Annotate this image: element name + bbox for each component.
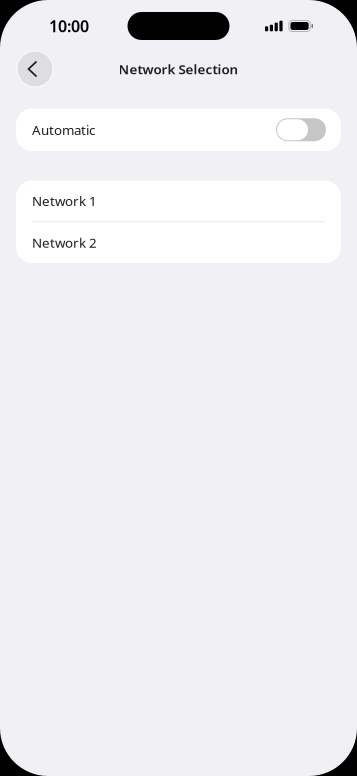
staticText: Automatic (32, 121, 95, 139)
button[interactable]: Back (17, 51, 53, 87)
staticText: 10:00 (49, 15, 89, 37)
staticText: Network Selection (118, 60, 238, 78)
button[interactable]: Network 2 (16, 222, 341, 263)
staticText: Network 2 (32, 234, 97, 251)
staticText: Network 1 (32, 192, 97, 210)
button[interactable]: Network 1 (16, 180, 341, 221)
button[interactable]: Automatic (16, 108, 341, 151)
